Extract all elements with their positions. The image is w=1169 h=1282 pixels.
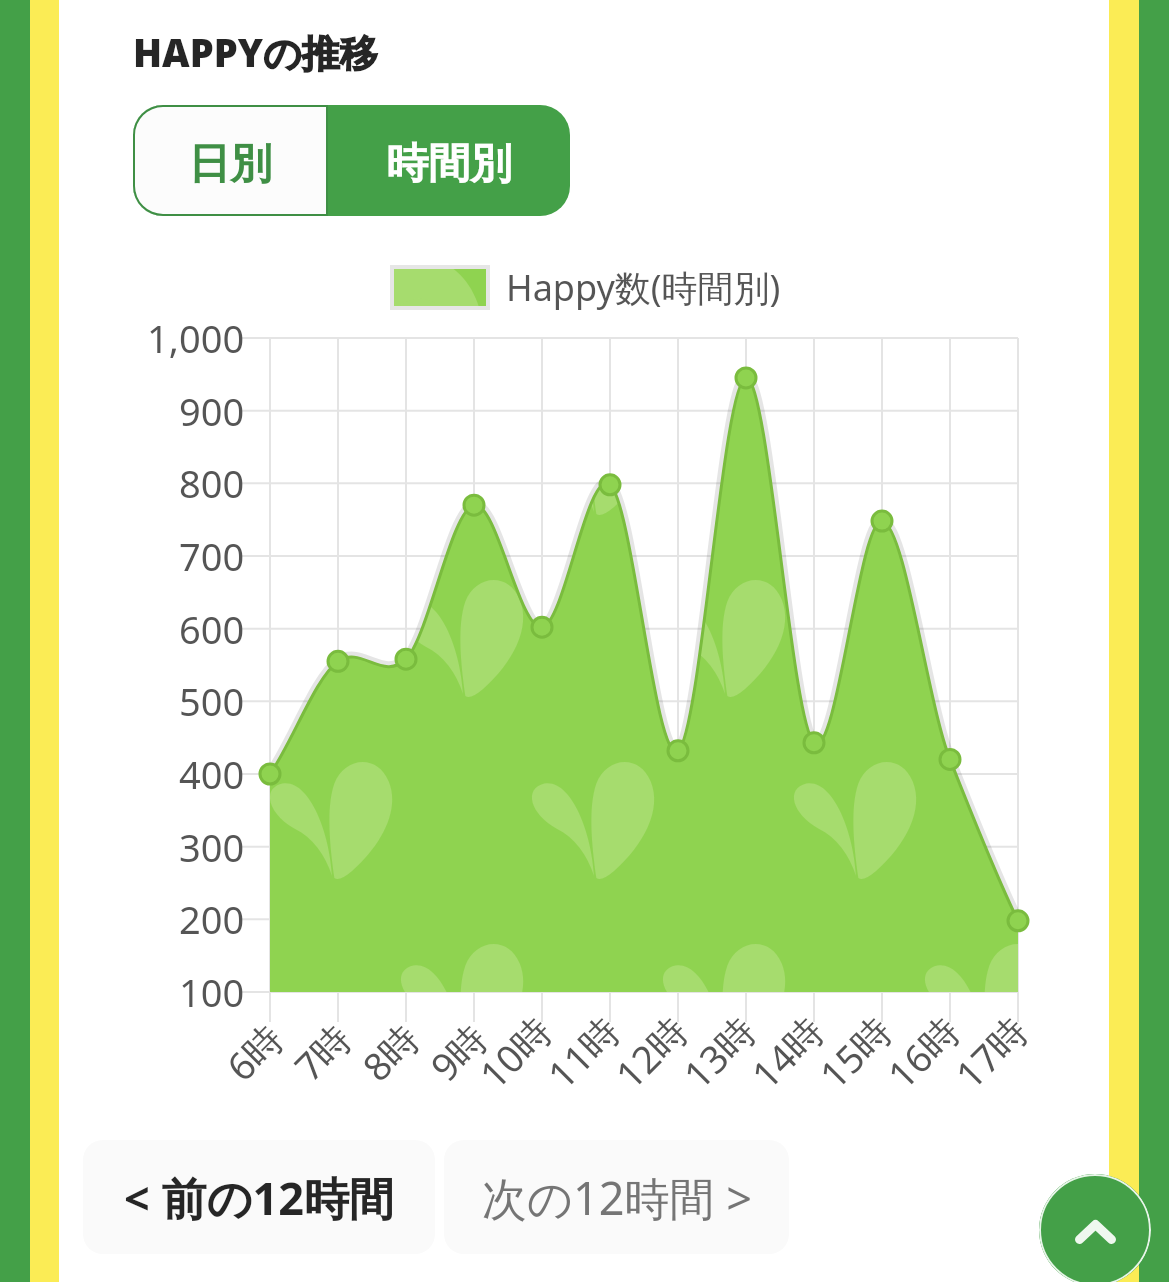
staticText: 6時 [214, 1012, 294, 1092]
staticText: 7時 [282, 1012, 362, 1092]
staticText: 900 [179, 385, 245, 437]
staticText: 14時 [740, 1005, 834, 1099]
staticText: 1,000 [147, 312, 245, 364]
staticText: HAPPYの推移 [133, 26, 378, 78]
staticText: 日別 [188, 138, 272, 191]
staticText: 400 [179, 748, 245, 800]
staticText: 600 [179, 603, 245, 655]
button[interactable]: 時間別 [327, 105, 570, 216]
staticText: 100 [179, 966, 245, 1018]
staticText: 8時 [350, 1012, 430, 1092]
staticText: 11時 [536, 1005, 630, 1099]
staticText: 時間別 [386, 138, 512, 191]
button[interactable]: Scroll to top [1039, 1174, 1151, 1282]
staticText: 9時 [418, 1012, 498, 1092]
staticText: < 前の12時間 [124, 1167, 394, 1228]
staticText: Happy数(時間別) [506, 263, 781, 312]
staticText: 300 [179, 821, 245, 873]
staticText: 12時 [604, 1005, 698, 1099]
staticText: 次の12時間 > [482, 1167, 752, 1228]
staticText: 13時 [672, 1005, 766, 1099]
button[interactable]: < 前の12時間 [83, 1140, 435, 1254]
staticText: 16時 [876, 1005, 970, 1099]
staticText: 10時 [468, 1005, 562, 1099]
button[interactable]: 次の12時間 > [444, 1140, 789, 1254]
staticText: 15時 [808, 1005, 902, 1099]
staticText: 200 [179, 893, 245, 945]
staticText: 800 [179, 457, 245, 509]
staticText: 700 [179, 530, 245, 582]
staticText: 17時 [944, 1005, 1038, 1099]
staticText: 500 [179, 675, 245, 727]
button[interactable]: 日別 [133, 105, 327, 216]
